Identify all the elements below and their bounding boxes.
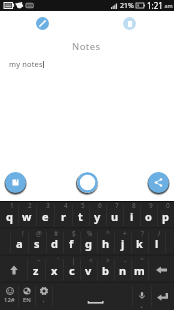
staticText: c <box>69 263 75 278</box>
staticText: h <box>102 236 110 251</box>
staticText: ` <box>57 256 59 265</box>
button[interactable]: > <box>97 256 114 283</box>
staticText: 0 <box>166 201 170 210</box>
staticText: , <box>43 296 45 304</box>
staticText: g <box>85 236 92 251</box>
button[interactable]: < <box>80 256 97 283</box>
button[interactable]: ? <box>131 229 148 256</box>
staticText: f <box>69 236 74 251</box>
button[interactable]: Emoji <box>0 283 18 310</box>
staticText: 5 <box>81 201 85 210</box>
staticText: ? <box>141 229 144 238</box>
button[interactable]: ` <box>45 256 63 283</box>
staticText: $ <box>72 229 76 238</box>
button[interactable]: 9 <box>140 201 157 229</box>
staticText: t <box>78 209 83 224</box>
staticText: a <box>16 236 23 251</box>
staticText: b <box>102 263 109 278</box>
button[interactable]: Space <box>52 283 132 310</box>
staticText: j <box>121 236 125 251</box>
staticText: Notes <box>72 40 101 53</box>
staticText: < <box>89 256 93 265</box>
button[interactable]: / <box>148 229 165 256</box>
staticText: my notes <box>9 59 43 69</box>
button[interactable]: Share <box>148 172 169 193</box>
staticText: d <box>51 236 58 251</box>
button[interactable]: Enter <box>151 283 174 310</box>
staticText: o <box>145 209 152 224</box>
button[interactable]: Voice input <box>132 283 151 310</box>
button[interactable]: % <box>80 229 97 256</box>
staticText: 3 <box>46 201 50 210</box>
staticText: 2 <box>28 201 32 210</box>
staticText: l <box>155 236 159 251</box>
staticText: 6 <box>98 201 102 210</box>
staticText: v <box>85 263 92 278</box>
staticText: 21% <box>120 1 134 11</box>
staticText: # <box>54 229 59 238</box>
button[interactable]: Backspace <box>148 256 174 283</box>
button[interactable]: Notes <box>123 17 136 30</box>
staticText: p <box>162 209 169 224</box>
staticText: r <box>61 209 66 224</box>
staticText: - <box>124 256 127 265</box>
staticText: 8 <box>132 201 136 210</box>
staticText: n <box>119 263 127 278</box>
staticText: am <box>163 2 173 9</box>
button[interactable]: 7 <box>106 201 123 229</box>
staticText: i <box>130 209 134 224</box>
staticText: e <box>42 209 49 224</box>
staticText: 1 <box>10 201 14 210</box>
button[interactable]: - <box>114 256 131 283</box>
staticText: / <box>158 229 161 238</box>
staticText: @ <box>36 229 42 238</box>
button[interactable]: Shift <box>0 256 27 283</box>
button[interactable]: 2 <box>18 201 36 229</box>
staticText: 12# <box>4 296 15 304</box>
button[interactable]: Edit <box>36 17 49 30</box>
button[interactable]: ! <box>10 229 28 256</box>
staticText: 4 <box>64 201 68 210</box>
button[interactable]: 3 <box>36 201 54 229</box>
button[interactable]: $ <box>63 229 80 256</box>
button[interactable]: 0 <box>157 201 174 229</box>
staticText: + <box>123 229 127 238</box>
button[interactable]: 5 <box>72 201 89 229</box>
staticText: | <box>72 256 76 265</box>
button[interactable]: ^ <box>97 229 114 256</box>
button[interactable]: Save <box>5 172 26 193</box>
staticText: 7 <box>115 201 119 210</box>
staticText: w <box>22 209 32 224</box>
staticText: 9 <box>149 201 153 210</box>
button[interactable]: 8 <box>123 201 140 229</box>
staticText: q <box>6 209 13 224</box>
button[interactable]: 4 <box>54 201 72 229</box>
staticText: ^ <box>106 229 110 238</box>
staticText: s <box>34 236 40 251</box>
button[interactable]: 1 <box>0 201 18 229</box>
staticText: > <box>106 256 110 265</box>
staticText: ~ <box>37 256 41 265</box>
staticText: % <box>87 229 93 238</box>
button[interactable]: Record <box>77 172 98 193</box>
button[interactable]: Language <box>18 283 35 310</box>
staticText: ! <box>22 229 24 238</box>
staticText: y <box>94 209 101 224</box>
staticText: x <box>51 263 58 278</box>
staticText: u <box>111 209 119 224</box>
staticText: 1:21 <box>147 0 163 11</box>
button[interactable]: " <box>131 256 148 283</box>
button[interactable]: 6 <box>89 201 106 229</box>
button[interactable]: | <box>63 256 80 283</box>
staticText: " <box>141 256 144 265</box>
button[interactable]: Settings <box>35 283 52 310</box>
staticText: m <box>134 263 145 278</box>
button[interactable]: ~ <box>27 256 45 283</box>
button[interactable]: + <box>114 229 131 256</box>
staticText: EN <box>23 296 31 304</box>
staticText: k <box>136 236 143 251</box>
staticText: z <box>33 263 39 278</box>
button[interactable]: # <box>46 229 63 256</box>
button[interactable]: @ <box>28 229 46 256</box>
